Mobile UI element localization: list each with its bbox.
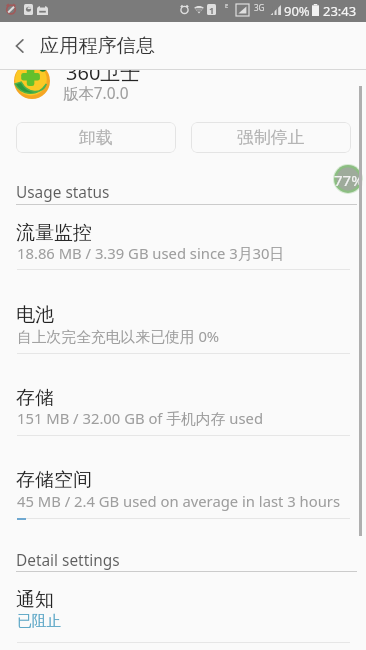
staticText: 45 MB / 2.4 GB used on average in last 3… bbox=[17, 491, 340, 511]
button[interactable]: 强制停止 bbox=[191, 122, 351, 153]
staticText: 23:43 bbox=[323, 2, 357, 20]
staticText: 18.86 MB / 3.39 GB used since 3月30日 bbox=[17, 243, 285, 263]
staticText: 77% bbox=[334, 170, 364, 190]
staticText: 3G bbox=[254, 2, 265, 13]
button[interactable]: 电池 bbox=[16, 303, 54, 327]
staticText: 360卫士 bbox=[66, 70, 141, 86]
button[interactable]: Back bbox=[0, 22, 40, 69]
staticText: 卸载 bbox=[79, 127, 113, 148]
staticText: 已阻止 bbox=[17, 612, 62, 631]
button[interactable]: 流量监控 bbox=[16, 221, 92, 245]
staticText: 通知 bbox=[16, 588, 54, 612]
staticText: 90% bbox=[284, 2, 310, 20]
staticText: 自上次完全充电以来已使用 0% bbox=[17, 326, 220, 346]
staticText: 151 MB / 32.00 GB of 手机内存 used bbox=[17, 408, 263, 428]
button[interactable]: 存储空间 bbox=[16, 468, 92, 492]
button[interactable]: 通知 bbox=[16, 588, 54, 612]
staticText: 电池 bbox=[16, 303, 54, 327]
staticText: Detail settings bbox=[16, 550, 120, 571]
staticText: 1 bbox=[209, 4, 215, 15]
staticText: 存储 bbox=[16, 386, 54, 410]
staticText: 存储空间 bbox=[16, 468, 92, 492]
staticText: E bbox=[225, 2, 229, 10]
button[interactable]: 卸载 bbox=[16, 122, 176, 153]
staticText: 强制停止 bbox=[237, 127, 305, 148]
staticText: 版本7.0.0 bbox=[63, 83, 129, 104]
staticText: 应用程序信息 bbox=[40, 34, 156, 58]
staticText: 流量监控 bbox=[16, 221, 92, 245]
staticText: Usage status bbox=[16, 182, 110, 203]
button[interactable]: 存储 bbox=[16, 386, 54, 410]
